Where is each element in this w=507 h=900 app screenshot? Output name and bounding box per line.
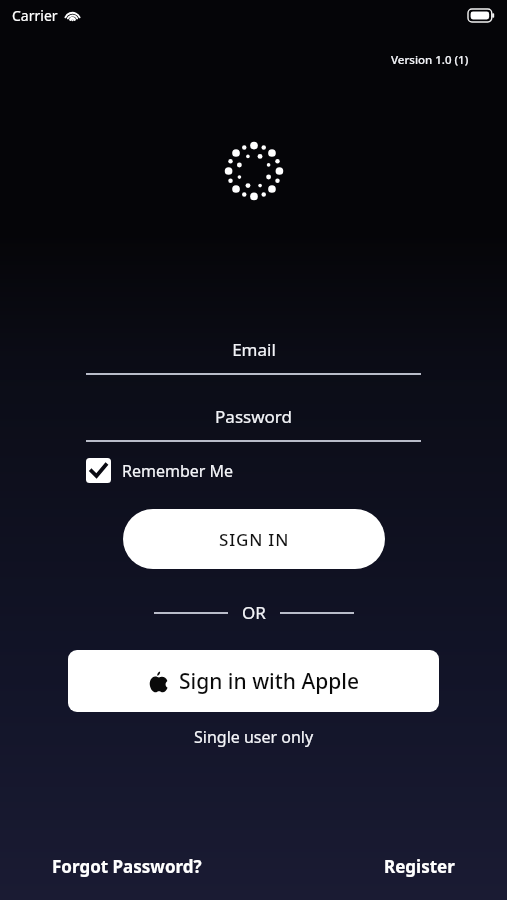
button[interactable]: Forgot Password?	[52, 855, 202, 878]
other: Wi-Fi	[64, 7, 81, 24]
staticText: OR	[242, 601, 266, 624]
staticText: Forgot Password?	[52, 855, 202, 878]
staticText: Password	[215, 405, 292, 428]
staticText: Register	[384, 855, 455, 878]
button[interactable]: SIGN IN	[123, 509, 385, 569]
staticText: Remember Me	[122, 460, 234, 482]
button[interactable]: Email	[86, 338, 421, 375]
button[interactable]: Remember Me checkbox	[86, 458, 507, 483]
button[interactable]: Register	[384, 855, 455, 878]
other: Battery	[468, 9, 495, 22]
other: Remember Me checkbox	[86, 458, 111, 483]
staticText: Version 1.0 (1)	[391, 52, 469, 68]
staticText: SIGN IN	[219, 528, 290, 551]
staticText: Single user only	[194, 726, 314, 748]
button[interactable]: Password	[86, 405, 421, 442]
button[interactable]: Sign in with Apple	[68, 650, 439, 712]
staticText: Sign in with Apple	[179, 667, 359, 696]
staticText: Carrier	[12, 6, 58, 25]
staticText: Email	[232, 338, 276, 361]
